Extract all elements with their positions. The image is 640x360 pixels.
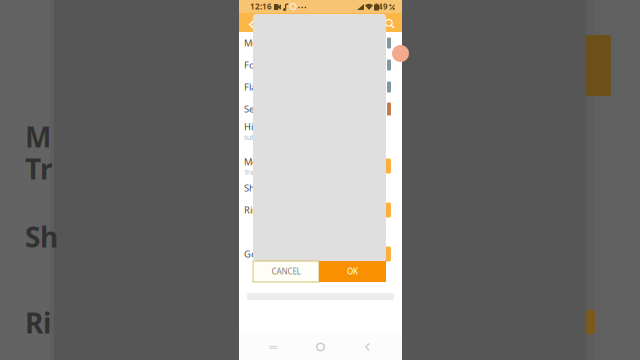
staticText: Rin — [244, 204, 258, 216]
button[interactable]: For — [239, 54, 402, 76]
staticText: sub — [244, 133, 255, 142]
staticText: Ri — [25, 304, 51, 341]
button[interactable]: Mo — [239, 155, 402, 177]
staticText: For — [244, 59, 259, 71]
staticText: Hid — [244, 120, 259, 133]
staticText: Sha — [244, 182, 260, 194]
staticText: Tra — [244, 168, 254, 177]
button[interactable]: Sha — [239, 177, 402, 199]
button[interactable]: Home — [307, 334, 333, 360]
staticText: M — [25, 118, 51, 155]
staticText: OK — [347, 266, 358, 277]
button[interactable]: Hid — [239, 120, 402, 142]
staticText: Sh — [25, 218, 58, 255]
button[interactable]: Set — [239, 98, 402, 120]
button[interactable]: Back — [240, 13, 262, 35]
staticText: CANCEL — [271, 266, 300, 277]
button[interactable]: Mus — [239, 32, 402, 54]
button[interactable]: Back — [355, 334, 381, 360]
button[interactable]: Fla — [239, 76, 402, 98]
staticText: 49 — [378, 1, 388, 12]
staticText: Tr — [25, 150, 53, 187]
staticText: Mus — [244, 37, 262, 49]
staticText: Fla — [244, 81, 256, 93]
staticText: Gen — [244, 248, 262, 260]
staticText: Mo — [244, 155, 258, 168]
button[interactable]: OK — [319, 261, 386, 282]
staticText: Set — [244, 103, 257, 115]
button[interactable]: Gen — [239, 243, 402, 265]
button[interactable]: Search — [379, 13, 401, 35]
button[interactable]: Rin — [239, 199, 402, 221]
button[interactable]: CANCEL — [253, 261, 319, 282]
staticText: 12:16 — [250, 1, 272, 12]
button[interactable]: Recents — [260, 334, 286, 360]
